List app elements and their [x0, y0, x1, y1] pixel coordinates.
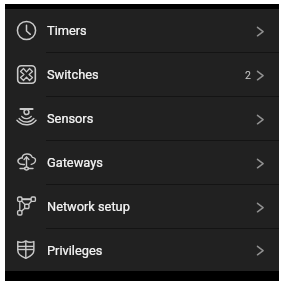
staticText: Switches	[47, 67, 99, 82]
staticText: Network setup	[47, 199, 130, 214]
button[interactable]: Timers	[5, 9, 279, 52]
staticText: Sensors	[47, 111, 94, 126]
button[interactable]: Sensors	[5, 97, 279, 140]
button[interactable]: Network setup	[5, 185, 279, 228]
staticText: Timers	[47, 23, 87, 38]
button[interactable]: Privileges	[5, 229, 279, 271]
staticText: Gateways	[47, 155, 103, 170]
staticText: 2	[245, 69, 251, 81]
staticText: Privileges	[47, 243, 103, 258]
button[interactable]: Switches	[5, 53, 279, 96]
button[interactable]: Gateways	[5, 141, 279, 184]
